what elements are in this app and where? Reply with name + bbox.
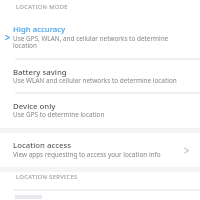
staticText: Location access <box>13 140 72 151</box>
button[interactable]: High accuracy <box>0 20 200 58</box>
staticText: Use GPS to determine location <box>13 110 105 119</box>
staticText: High accuracy <box>13 24 66 35</box>
button[interactable]: Location access <box>0 134 200 166</box>
button[interactable]: Device only <box>0 93 200 128</box>
staticText: View apps requesting to access your loca… <box>13 150 161 159</box>
staticText: LOCATION SERVICES <box>16 173 78 181</box>
staticText: Battery saving <box>13 67 67 78</box>
other: Selected <box>5 35 10 40</box>
staticText: LOCATION MODE <box>16 3 68 11</box>
other: Open location access <box>182 146 191 155</box>
button[interactable]: Battery saving <box>0 59 200 90</box>
staticText: Use WLAN and cellular networks to determ… <box>13 76 177 85</box>
staticText: Use GPS, WLAN, and cellular networks to … <box>13 34 193 50</box>
staticText: Device only <box>13 101 56 112</box>
